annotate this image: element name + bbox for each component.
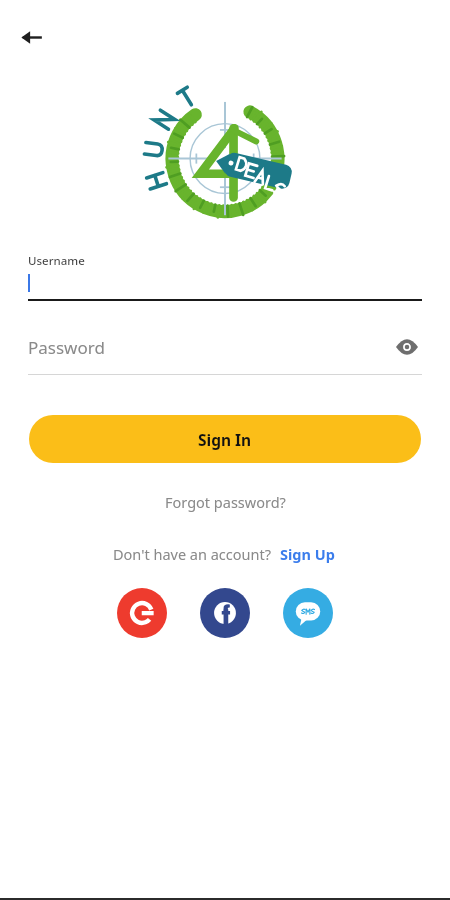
staticText: Sign In [198, 429, 252, 450]
staticText: Don't have an account? [113, 544, 271, 564]
button[interactable]: Show password [392, 332, 422, 362]
button[interactable]: Sign in with Facebook [200, 588, 250, 638]
button[interactable]: Forgot password? [155, 488, 296, 516]
button[interactable]: Password [28, 332, 422, 375]
button[interactable]: Sign in with Google [117, 588, 167, 638]
button[interactable]: Sign In [29, 415, 421, 463]
staticText: Sign Up [280, 544, 335, 564]
button[interactable]: Username [28, 253, 422, 301]
staticText: Username [28, 253, 85, 269]
button[interactable]: Sign Up [278, 541, 337, 567]
button[interactable]: Sign in with SMS [283, 588, 333, 638]
staticText: Forgot password? [165, 492, 286, 512]
staticText: Password [28, 336, 105, 359]
button[interactable]: Back [7, 13, 55, 61]
